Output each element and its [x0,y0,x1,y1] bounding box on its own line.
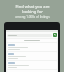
button[interactable] [7,52,57,60]
button[interactable] [7,43,57,51]
button[interactable] [7,39,57,42]
button[interactable] [7,34,52,37]
button[interactable]: Search listings [53,33,57,37]
staticText: looking for [22,9,43,14]
staticText: among 1.000s of listings [15,15,50,19]
staticText: Find what you are [15,4,50,9]
button[interactable] [7,61,57,69]
